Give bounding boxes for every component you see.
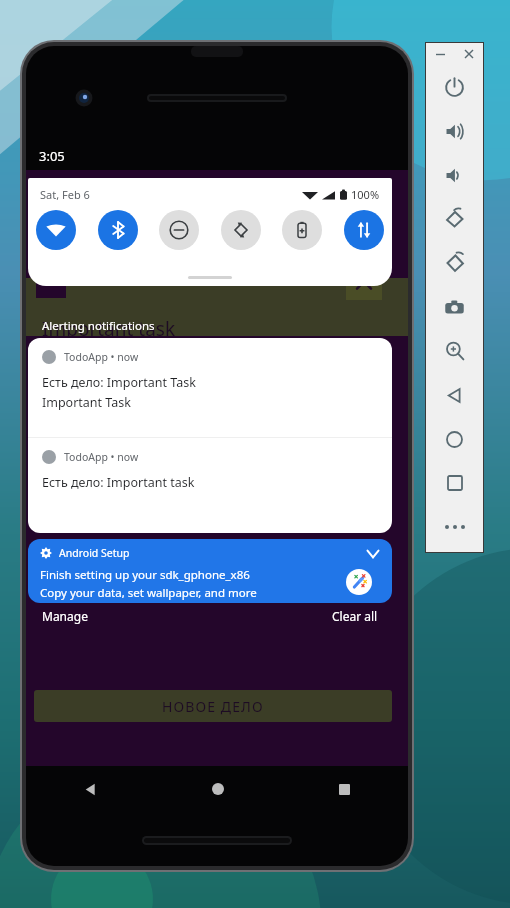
button[interactable]: Overview: [426, 461, 483, 505]
button[interactable]: Back: [26, 766, 154, 812]
button[interactable]: Take screenshot: [426, 285, 483, 329]
button[interactable]: Minimize: [430, 44, 450, 64]
button[interactable]: Collapse: [346, 270, 382, 300]
button[interactable]: Expand: [364, 545, 382, 563]
button[interactable]: Auto-rotate: [221, 210, 261, 250]
staticText: TodoApp • now: [64, 450, 139, 464]
button[interactable]: Clear all: [332, 608, 378, 624]
button[interactable]: Android Setup: [28, 539, 392, 603]
button[interactable]: Home: [426, 417, 483, 461]
staticText: 100%: [351, 187, 380, 202]
button[interactable]: Home: [154, 766, 281, 812]
button[interactable]: Zoom: [426, 329, 483, 373]
staticText: Sat, Feb 6: [40, 187, 90, 202]
staticText: TodoApp • now: [64, 350, 139, 364]
staticText: Есть дело: Important Task: [42, 374, 196, 391]
button[interactable]: TodoApp • now: [28, 438, 392, 533]
staticText: НОВОЕ ДЕЛО: [162, 697, 264, 716]
button[interactable]: Manage: [42, 608, 88, 624]
staticText: Android Setup: [59, 546, 130, 560]
staticText: Manage: [42, 608, 88, 624]
button[interactable]: Back: [426, 373, 483, 417]
button[interactable]: Mobile data: [344, 210, 384, 250]
button[interactable]: Do not disturb: [159, 210, 199, 250]
button[interactable]: НОВОЕ ДЕЛО: [34, 690, 392, 722]
button[interactable]: Volume up: [426, 109, 483, 153]
button[interactable]: Recent apps: [281, 766, 408, 812]
button[interactable]: Battery saver: [282, 210, 322, 250]
staticText: Есть дело: Important task: [42, 474, 195, 491]
button[interactable]: TodoApp • now: [28, 338, 392, 437]
button[interactable]: Wi-Fi: [36, 210, 76, 250]
button[interactable]: More: [426, 505, 483, 549]
staticText: Alerting notifications: [42, 318, 155, 334]
staticText: Clear all: [332, 608, 378, 624]
button[interactable]: Volume down: [426, 153, 483, 197]
staticText: Important task: [42, 316, 176, 342]
button[interactable]: Power: [426, 65, 483, 109]
staticText: Finish setting up your sdk_gphone_x86: [40, 567, 250, 583]
staticText: 3:05: [39, 147, 65, 165]
button[interactable]: Close: [459, 44, 479, 64]
staticText: Important Task: [42, 394, 131, 411]
button[interactable]: Rotate right: [426, 241, 483, 285]
button[interactable]: Rotate left: [426, 197, 483, 241]
staticText: Copy your data, set wallpaper, and more: [40, 585, 257, 601]
button[interactable]: Bluetooth: [98, 210, 138, 250]
